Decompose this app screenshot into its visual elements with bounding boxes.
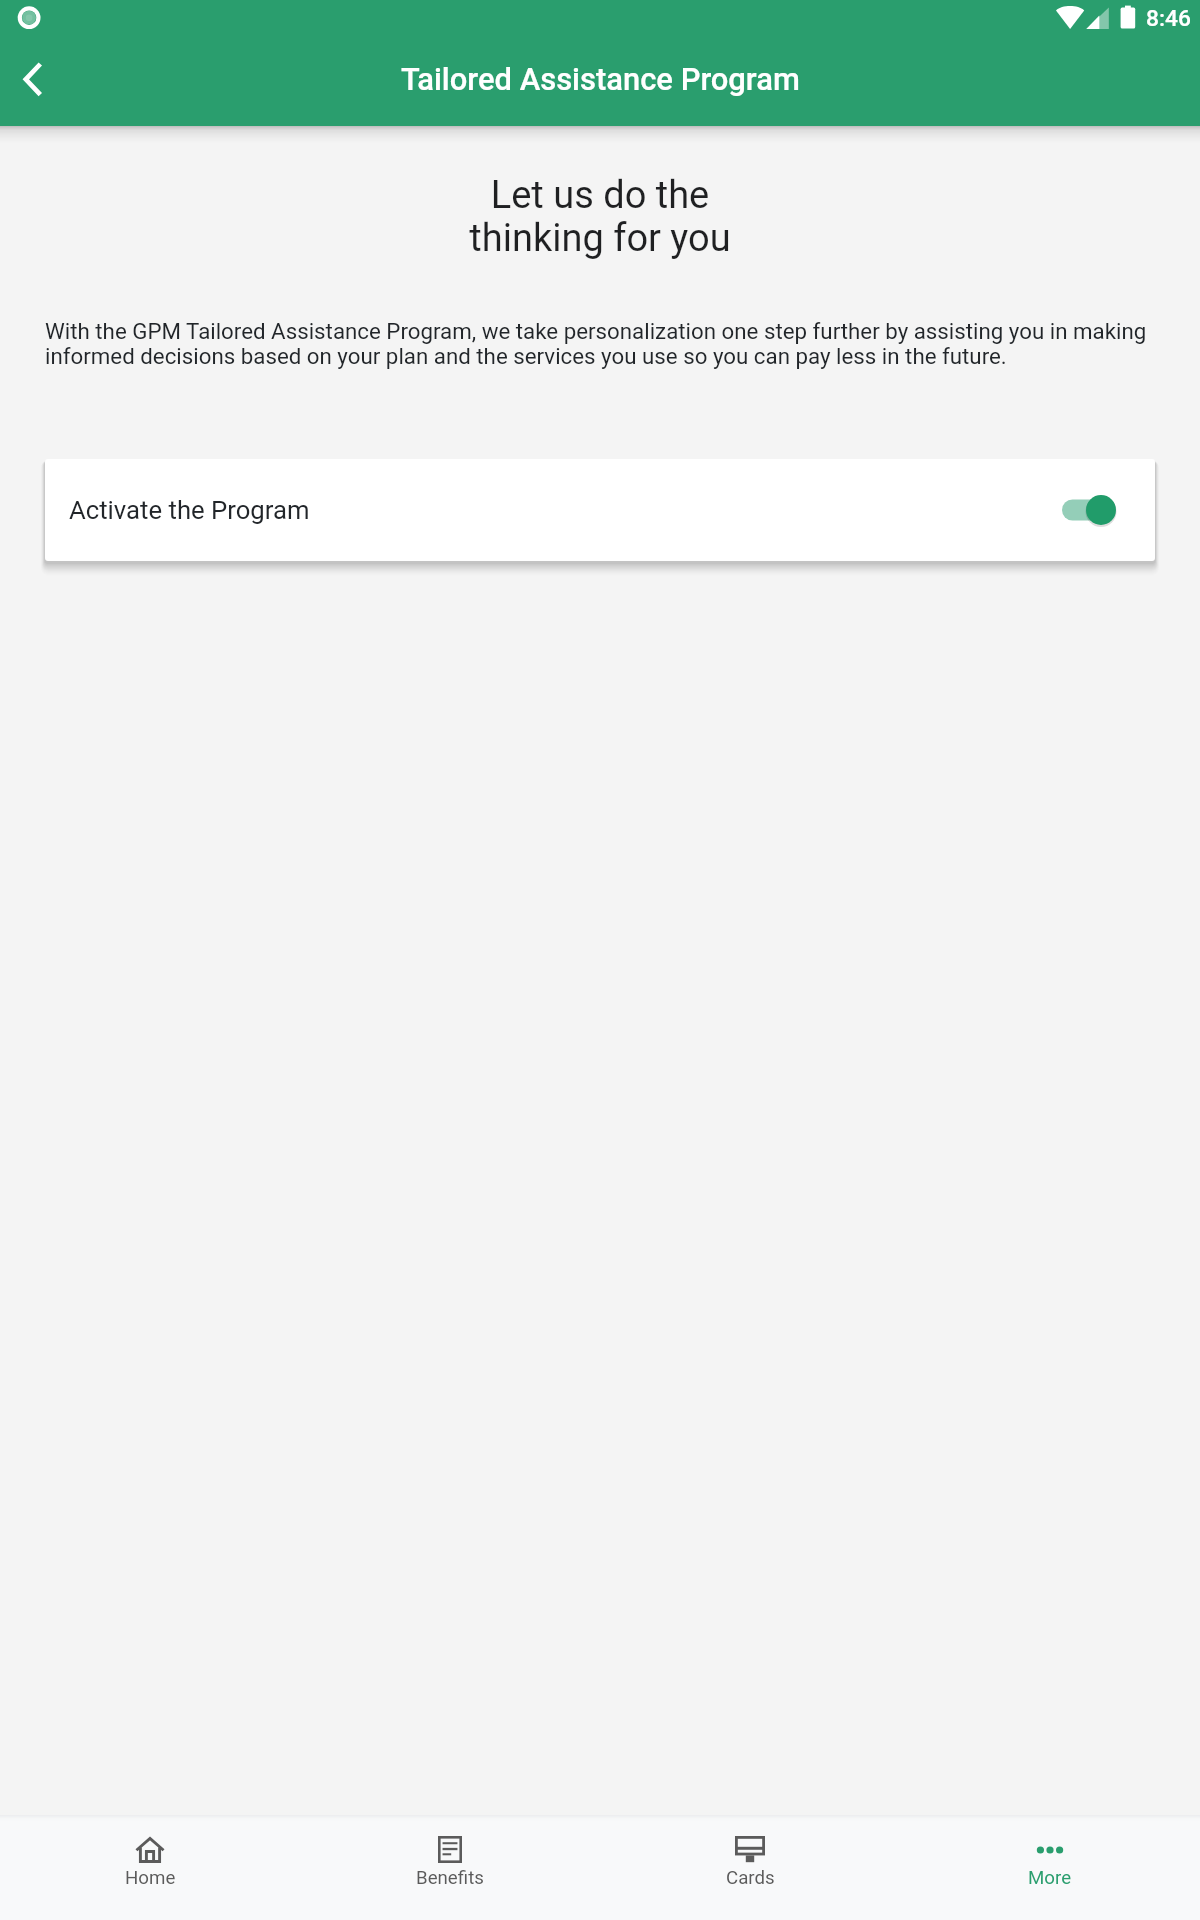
staticText: Tailored Assistance Program xyxy=(401,61,800,97)
button[interactable]: Activate the Program xyxy=(45,459,1155,561)
staticText: Benefits xyxy=(416,1867,484,1889)
button[interactable]: Benefits xyxy=(300,1816,600,1920)
button[interactable]: Activate the Program toggle xyxy=(1062,493,1116,527)
staticText: With the GPM Tailored Assistance Program… xyxy=(45,318,1155,369)
staticText: Activate the Program xyxy=(69,495,310,525)
staticText: Cards xyxy=(726,1867,775,1889)
staticText: Let us do the thinking for you xyxy=(0,173,1200,260)
staticText: More xyxy=(1028,1867,1072,1889)
button[interactable]: Back xyxy=(0,46,65,126)
button[interactable]: More xyxy=(900,1816,1200,1920)
staticText: Home xyxy=(125,1867,176,1889)
button[interactable]: Home xyxy=(0,1816,300,1920)
staticText: 8:46 xyxy=(1146,5,1191,32)
button[interactable]: Cards xyxy=(600,1816,900,1920)
